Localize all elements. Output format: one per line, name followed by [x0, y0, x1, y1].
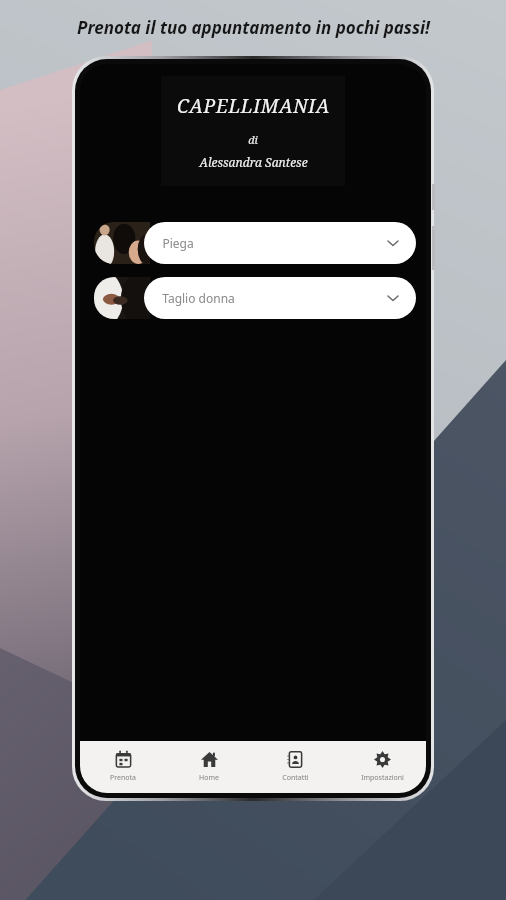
button[interactable]: Impostazioni: [339, 741, 426, 793]
button[interactable]: Contatti: [252, 741, 339, 793]
staticText: Piega: [162, 235, 194, 251]
staticText: Prenota il tuo appuntamento in pochi pas…: [77, 16, 430, 39]
button[interactable]: Piega: [94, 222, 416, 264]
staticText: Taglio donna: [162, 290, 235, 306]
staticText: Alessandra Santese: [199, 154, 308, 170]
button[interactable]: Prenota: [80, 741, 166, 793]
staticText: Impostazioni: [361, 773, 404, 783]
staticText: Contatti: [282, 773, 309, 783]
staticText: di: [248, 132, 258, 147]
button[interactable]: Taglio donna: [94, 277, 416, 319]
staticText: Prenota: [110, 773, 136, 783]
button[interactable]: Home: [166, 741, 252, 793]
staticText: Home: [199, 773, 219, 783]
staticText: CAPELLIMANIA: [177, 93, 330, 119]
